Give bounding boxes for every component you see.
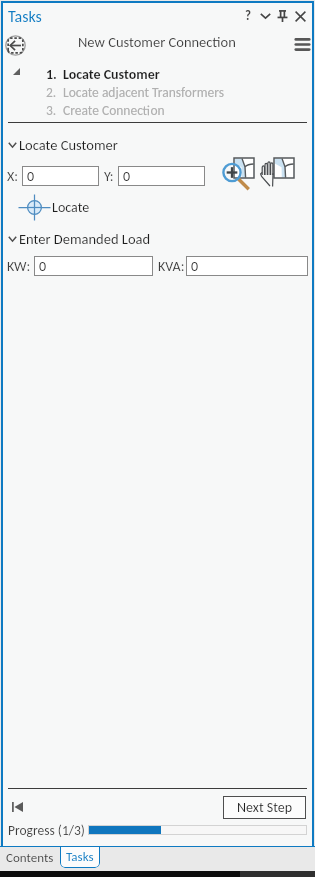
staticText: 0 — [39, 258, 47, 275]
button[interactable]: Help — [240, 6, 256, 26]
staticText: Locate adjacent Transformers — [63, 84, 224, 100]
staticText: Y: — [104, 168, 114, 185]
staticText: 0 — [123, 168, 131, 185]
staticText: KW: — [7, 258, 31, 275]
button[interactable]: Contents — [0, 847, 60, 868]
button[interactable]: Locate — [18, 194, 90, 221]
button[interactable]: Next Step — [223, 796, 306, 819]
staticText: Locate Customer — [63, 66, 160, 83]
button[interactable]: Enter Demanded Load — [0, 230, 315, 248]
staticText: Progress (1/3) — [8, 822, 85, 838]
button[interactable]: Zoom to location — [220, 156, 254, 190]
staticText: Tasks — [8, 7, 42, 27]
button[interactable]: 0 — [22, 166, 99, 186]
button[interactable]: 3. — [46, 101, 315, 119]
button[interactable]: Close — [292, 6, 308, 26]
button[interactable]: Tasks — [60, 846, 100, 868]
button[interactable]: Back — [5, 35, 26, 56]
staticText: Enter Demanded Load — [19, 230, 151, 248]
button[interactable]: 1. — [46, 65, 315, 83]
staticText: 2. — [46, 84, 57, 100]
staticText: 3. — [46, 102, 57, 118]
staticText: 1. — [46, 66, 57, 83]
button[interactable]: Go to first step — [6, 796, 28, 818]
staticText: X: — [7, 168, 19, 185]
staticText: New Customer Connection — [78, 33, 236, 51]
button[interactable]: Pin pane — [274, 6, 290, 26]
button[interactable]: 0 — [118, 166, 205, 186]
staticText: Locate — [52, 199, 90, 216]
staticText: Contents — [6, 850, 54, 866]
staticText: Next Step — [237, 799, 293, 816]
staticText: 0 — [191, 258, 199, 275]
staticText: ? — [245, 8, 252, 24]
staticText: Create Connection — [63, 102, 165, 118]
button[interactable]: Locate Customer — [0, 136, 315, 154]
button[interactable]: 0 — [34, 256, 153, 276]
staticText: 0 — [27, 168, 35, 185]
staticText: Tasks — [66, 849, 94, 865]
staticText: Locate Customer — [19, 136, 118, 154]
button[interactable]: Pan map — [260, 156, 294, 190]
button[interactable]: Task options — [292, 34, 312, 54]
button[interactable]: Pane options — [257, 6, 273, 26]
staticText: KVA: — [158, 258, 185, 275]
button[interactable]: 0 — [186, 256, 308, 276]
button[interactable]: 2. — [46, 83, 315, 101]
